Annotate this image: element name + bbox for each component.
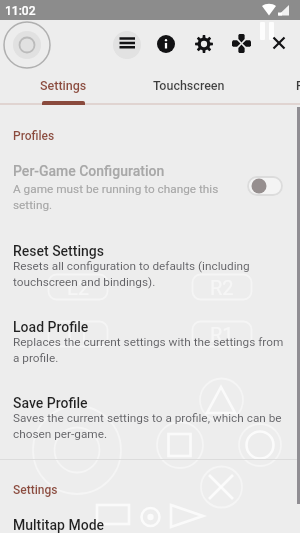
button[interactable]: Controller mapping: [232, 34, 251, 53]
staticText: Load Profile: [13, 319, 89, 335]
staticText: L1: [67, 323, 90, 346]
staticText: Save Profile: [13, 395, 88, 411]
staticText: Settings: [40, 78, 87, 93]
button[interactable]: Touchscreen: [126, 67, 252, 103]
staticText: Profiles: [13, 129, 55, 143]
staticText: R2: [210, 276, 234, 299]
staticText: L2: [67, 276, 90, 299]
staticText: 11:02: [5, 4, 36, 18]
button[interactable]: Close: [272, 36, 286, 50]
button[interactable]: Per-Game Configuration toggle: [246, 175, 284, 197]
staticText: Profiles: [296, 78, 300, 93]
staticText: Resets all configuration to defaults (in…: [13, 259, 258, 289]
staticText: A game must be running to change this se…: [13, 182, 242, 212]
staticText: Multitap Mode: [13, 517, 105, 533]
staticText: Per-Game Configuration: [13, 163, 165, 179]
staticText: Touchscreen: [153, 78, 225, 93]
staticText: R1: [210, 323, 234, 346]
staticText: Settings: [13, 483, 58, 497]
staticText: Replaces the current settings with the s…: [13, 335, 288, 365]
button[interactable]: Info: [157, 35, 175, 53]
button[interactable]: Profiles: [252, 67, 300, 103]
staticText: Reset Settings: [13, 243, 104, 259]
button[interactable]: Menu: [113, 31, 141, 59]
button[interactable]: Settings: [0, 67, 126, 103]
staticText: Saves the current settings to a profile,…: [13, 411, 288, 441]
button[interactable]: Settings: [195, 35, 213, 53]
